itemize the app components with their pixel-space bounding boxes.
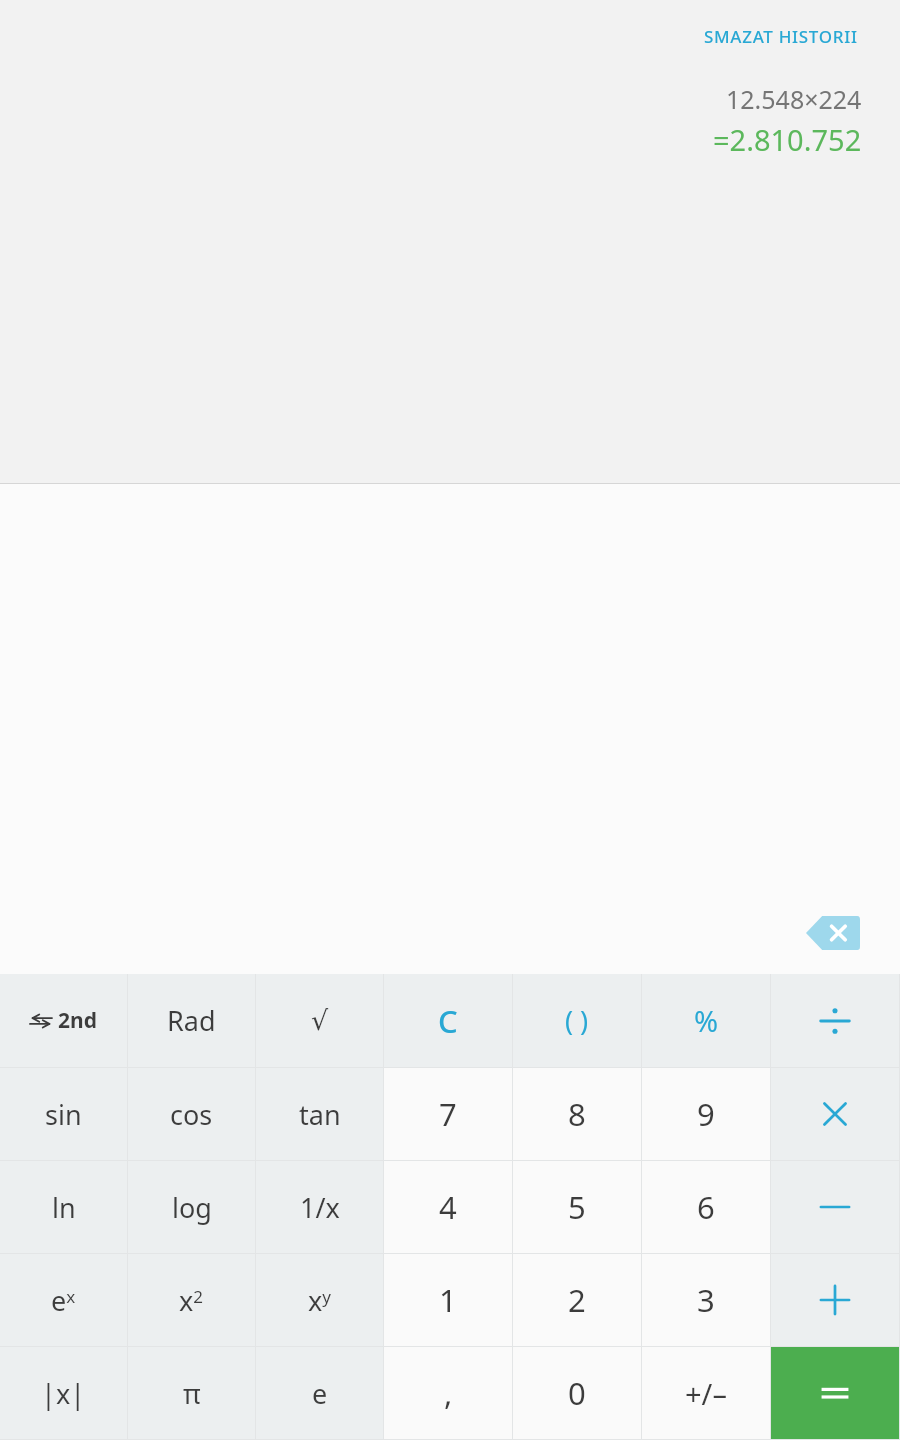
button[interactable]: π — [128, 1347, 255, 1439]
button[interactable]: Backspace — [806, 916, 860, 950]
button[interactable]: 2nd — [0, 974, 127, 1067]
staticText: √ — [311, 1005, 329, 1036]
staticText: 6 — [697, 1186, 715, 1228]
button[interactable]: +/– — [642, 1347, 770, 1439]
staticText: xy — [308, 1282, 331, 1319]
button[interactable]: % — [642, 974, 770, 1067]
button[interactable] — [771, 1347, 899, 1439]
staticText: 1 — [439, 1279, 457, 1321]
staticText: Rad — [167, 1002, 216, 1039]
button[interactable]: ( ) — [513, 974, 641, 1067]
staticText: 7 — [439, 1093, 457, 1135]
staticText: 8 — [568, 1093, 586, 1135]
button[interactable]: log — [128, 1161, 255, 1253]
staticText: log — [172, 1189, 212, 1226]
button[interactable]: ln — [0, 1161, 127, 1253]
staticText: =2.810.752 — [713, 120, 862, 159]
button[interactable]: |x| — [0, 1347, 127, 1439]
button[interactable]: 7 — [384, 1068, 512, 1160]
button[interactable] — [771, 1254, 899, 1346]
button[interactable]: 2 — [513, 1254, 641, 1346]
button[interactable]: 1/x — [256, 1161, 383, 1253]
button[interactable]: ex — [0, 1254, 127, 1346]
button[interactable]: 8 — [513, 1068, 641, 1160]
staticText: 4 — [439, 1186, 457, 1228]
staticText: ( ) — [565, 1002, 589, 1039]
staticText: , — [444, 1372, 453, 1414]
button[interactable]: 1 — [384, 1254, 512, 1346]
staticText: tan — [299, 1096, 341, 1133]
staticText: 3 — [697, 1279, 715, 1321]
button[interactable]: xy — [256, 1254, 383, 1346]
button[interactable]: √ — [256, 974, 383, 1067]
staticText: π — [183, 1375, 201, 1412]
button[interactable]: Rad — [128, 974, 255, 1067]
staticText: |x| — [41, 1375, 86, 1412]
button[interactable]: 9 — [642, 1068, 770, 1160]
staticText: ln — [52, 1189, 76, 1226]
button[interactable]: 6 — [642, 1161, 770, 1253]
staticText: ex — [51, 1282, 76, 1319]
staticText: cos — [170, 1096, 213, 1133]
staticText: 12.548×224 — [726, 82, 862, 116]
staticText: % — [694, 1001, 719, 1040]
button[interactable]: 5 — [513, 1161, 641, 1253]
staticText: 5 — [568, 1186, 586, 1228]
button[interactable]: tan — [256, 1068, 383, 1160]
button[interactable]: cos — [128, 1068, 255, 1160]
staticText: C — [438, 1000, 458, 1042]
staticText: x2 — [179, 1282, 204, 1319]
staticText: +/– — [685, 1374, 727, 1413]
staticText: 9 — [697, 1093, 715, 1135]
button[interactable] — [771, 974, 899, 1067]
button[interactable]: 4 — [384, 1161, 512, 1253]
button[interactable]: x2 — [128, 1254, 255, 1346]
button[interactable]: sin — [0, 1068, 127, 1160]
button[interactable]: 3 — [642, 1254, 770, 1346]
button[interactable]: SMAZAT HISTORII — [700, 22, 862, 51]
button[interactable]: C — [384, 974, 512, 1067]
staticText: 1/x — [300, 1189, 340, 1226]
button[interactable] — [771, 1068, 899, 1160]
staticText: SMAZAT HISTORII — [704, 25, 858, 48]
button[interactable]: , — [384, 1347, 512, 1439]
staticText: 2nd — [58, 1006, 97, 1035]
staticText: e — [312, 1375, 328, 1412]
button[interactable]: 0 — [513, 1347, 641, 1439]
staticText: 0 — [568, 1372, 586, 1414]
staticText: 2 — [568, 1279, 586, 1321]
button[interactable]: e — [256, 1347, 383, 1439]
button[interactable] — [771, 1161, 899, 1253]
staticText: sin — [45, 1096, 82, 1133]
